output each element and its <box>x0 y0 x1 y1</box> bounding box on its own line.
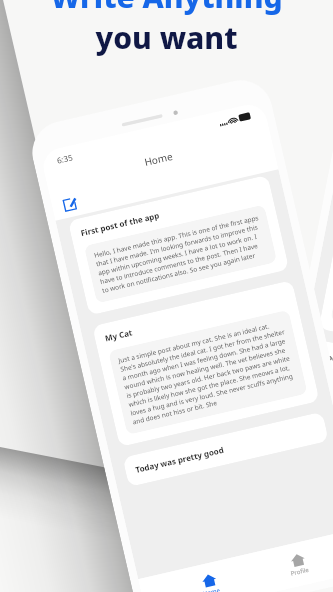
button[interactable]: Today was pretty good <box>122 412 329 487</box>
button[interactable]: First post of the app <box>68 175 289 315</box>
staticText: Just a simple post about my cat. She is … <box>117 318 298 426</box>
staticText: My Cat <box>104 326 134 343</box>
staticText: Today was pretty good <box>322 350 333 378</box>
staticText: you want <box>95 17 238 58</box>
staticText: First post of the app <box>79 209 161 238</box>
staticText: Today was pretty good <box>134 444 225 475</box>
button[interactable]: My Cat <box>92 280 320 447</box>
staticText: 6:35 <box>56 151 74 166</box>
button[interactable]: Today was pretty good <box>311 339 333 408</box>
staticText: Hello, I have made this app. This is one… <box>93 213 268 295</box>
button[interactable]: Home <box>186 566 234 592</box>
button[interactable]: Profile <box>274 545 323 583</box>
staticText: Home <box>143 149 174 169</box>
staticText: Write Anything <box>50 0 283 17</box>
staticText: Profile <box>290 566 310 578</box>
staticText: Home <box>202 586 222 592</box>
button[interactable]: My Cat <box>318 207 333 368</box>
button[interactable]: Create new post <box>61 196 79 214</box>
